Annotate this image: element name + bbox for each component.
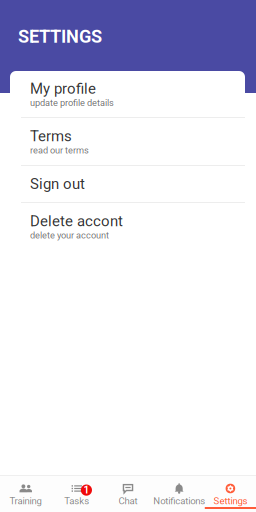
staticText: My profile bbox=[30, 80, 96, 97]
staticText: Tasks bbox=[64, 495, 89, 507]
button[interactable]: Chat bbox=[102, 476, 154, 512]
button[interactable]: Tasks bbox=[51, 476, 102, 512]
button[interactable]: My profile bbox=[10, 71, 245, 117]
button[interactable]: Sign out bbox=[10, 166, 245, 202]
staticText: read our terms bbox=[30, 145, 89, 156]
staticText: update profile details bbox=[30, 97, 114, 108]
staticText: Terms bbox=[30, 127, 72, 145]
button[interactable]: Training bbox=[0, 476, 51, 512]
button[interactable]: Terms bbox=[10, 118, 245, 165]
staticText: Notifications bbox=[153, 495, 205, 507]
staticText: Delete accont bbox=[30, 212, 123, 230]
button[interactable]: Notifications bbox=[154, 476, 205, 512]
staticText: 1 bbox=[83, 484, 89, 496]
staticText: delete your account bbox=[30, 230, 109, 241]
staticText: Chat bbox=[118, 495, 137, 507]
staticText: Settings bbox=[213, 495, 247, 507]
button[interactable]: Settings bbox=[205, 476, 256, 512]
staticText: SETTINGS bbox=[18, 26, 102, 47]
button[interactable]: Delete accont bbox=[10, 203, 245, 250]
staticText: Sign out bbox=[30, 175, 85, 193]
staticText: Training bbox=[10, 495, 42, 507]
